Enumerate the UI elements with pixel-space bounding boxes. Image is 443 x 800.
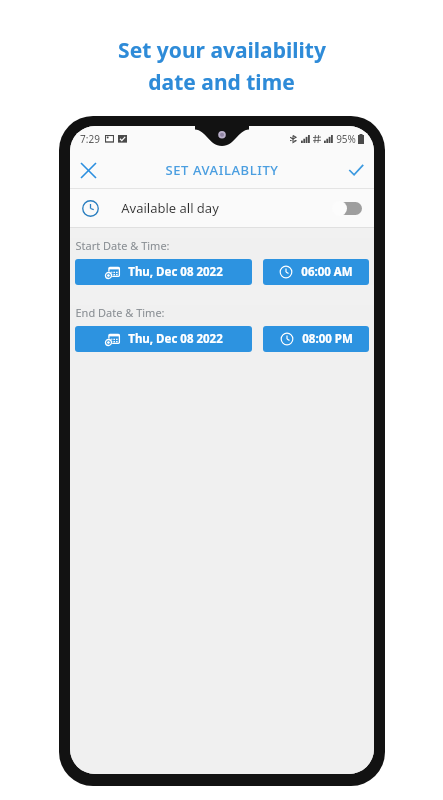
staticText: 06:00 AM bbox=[301, 264, 353, 280]
button[interactable]: Close bbox=[70, 152, 106, 188]
button[interactable]: 08:00 PM bbox=[263, 326, 369, 352]
button[interactable]: Confirm bbox=[338, 152, 374, 188]
staticText: Thu, Dec 08 2022 bbox=[128, 331, 223, 347]
staticText: Set your availability bbox=[118, 36, 326, 65]
staticText: SET AVAILABLITY bbox=[165, 161, 279, 179]
staticText: Available all day bbox=[121, 199, 219, 217]
button[interactable]: Thu, Dec 08 2022 bbox=[75, 326, 252, 352]
staticText: 95% bbox=[336, 132, 356, 146]
staticText: date and time bbox=[148, 68, 295, 97]
button[interactable]: 06:00 AM bbox=[263, 259, 369, 285]
staticText: Start Date & Time: bbox=[75, 238, 170, 253]
staticText: End Date & Time: bbox=[75, 305, 165, 320]
staticText: 08:00 PM bbox=[302, 331, 353, 347]
button[interactable]: Thu, Dec 08 2022 bbox=[75, 259, 252, 285]
button[interactable]: Available all day bbox=[70, 189, 374, 227]
staticText: Thu, Dec 08 2022 bbox=[128, 264, 223, 280]
staticText: 7:29 bbox=[80, 132, 100, 146]
